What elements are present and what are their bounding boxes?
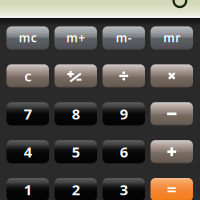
button[interactable]: plus minus <box>54 64 97 87</box>
staticText: mr <box>163 29 180 45</box>
staticText: 7 <box>24 104 32 124</box>
staticText: 1 <box>24 180 32 199</box>
button[interactable]: memory recall <box>150 26 193 50</box>
staticText: mc <box>19 29 37 45</box>
button[interactable]: multiply <box>150 64 193 87</box>
staticText: 2 <box>72 180 80 199</box>
button[interactable]: 2 <box>54 178 97 200</box>
staticText: 9 <box>120 104 128 124</box>
staticText: c <box>24 66 31 86</box>
button[interactable]: clear <box>6 64 49 87</box>
staticText: 8 <box>72 104 80 124</box>
button[interactable]: 5 <box>54 140 97 163</box>
button[interactable]: 3 <box>102 178 145 200</box>
staticText: m- <box>116 29 132 45</box>
button[interactable]: 8 <box>54 102 97 125</box>
button[interactable]: 4 <box>6 140 49 163</box>
staticText: 6 <box>120 142 128 161</box>
button[interactable]: minus <box>150 102 193 125</box>
staticText: 5 <box>72 142 80 161</box>
button[interactable]: 6 <box>102 140 145 163</box>
button[interactable]: divide <box>102 64 145 87</box>
button[interactable]: memory subtract <box>102 26 145 50</box>
staticText: m+ <box>66 29 85 45</box>
button[interactable]: memory clear <box>6 26 49 50</box>
button[interactable]: 9 <box>102 102 145 125</box>
staticText: 4 <box>24 142 32 161</box>
staticText: 3 <box>120 180 128 199</box>
button[interactable]: equals <box>150 178 193 200</box>
staticText: = <box>167 178 177 200</box>
button[interactable]: 7 <box>6 102 49 125</box>
button[interactable]: 1 <box>6 178 49 200</box>
button[interactable]: memory add <box>54 26 97 50</box>
button[interactable]: plus <box>150 140 193 163</box>
